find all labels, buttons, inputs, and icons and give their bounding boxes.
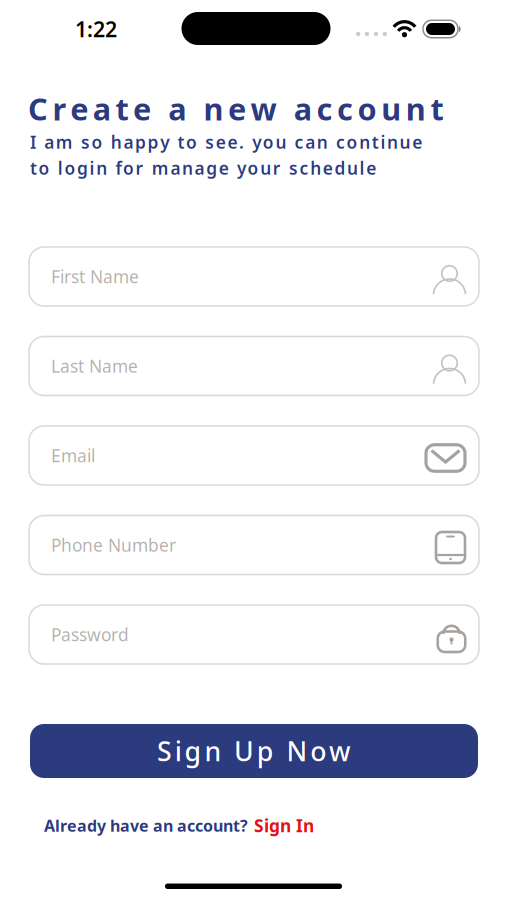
button[interactable]: Password [29, 605, 479, 664]
staticText: Sign In [254, 814, 314, 837]
button[interactable]: Sign In [254, 814, 314, 837]
staticText: 1:22 [75, 15, 117, 43]
staticText: I am so happy to see. you can continue [30, 130, 422, 153]
staticText: Email [51, 444, 95, 467]
staticText: Already have an account? [44, 815, 248, 836]
staticText: Phone Number [51, 533, 176, 556]
staticText: to login for manage your schedule [30, 156, 376, 179]
staticText: Create a new account [28, 88, 443, 129]
staticText: Password [51, 623, 129, 646]
staticText: Sign Up Now [157, 733, 351, 769]
button[interactable]: Phone Number [29, 515, 479, 574]
button[interactable]: Sign Up Now [30, 724, 478, 778]
button[interactable]: Last Name [29, 336, 479, 395]
staticText: Last Name [51, 354, 138, 377]
button[interactable]: First Name [29, 247, 479, 306]
button[interactable]: Email [29, 426, 479, 485]
staticText: First Name [51, 265, 139, 288]
